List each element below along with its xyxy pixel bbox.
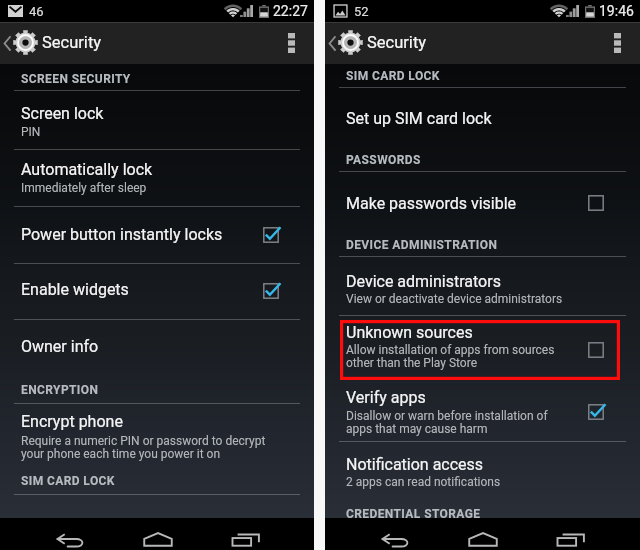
button[interactable] (325, 173, 640, 229)
button[interactable] (0, 264, 314, 319)
staticText: SCREEN SECURITY (21, 72, 131, 86)
staticText: apps that may cause harm (346, 422, 488, 436)
button[interactable] (0, 320, 314, 376)
button[interactable] (325, 443, 640, 501)
staticText: Security (42, 33, 102, 52)
button[interactable]: Home (114, 518, 202, 550)
staticText: Owner info (21, 337, 99, 356)
button[interactable] (0, 150, 314, 206)
staticText: Notification access (346, 455, 484, 474)
button[interactable]: Back (351, 518, 439, 550)
staticText: other than the Play Store (346, 356, 478, 370)
staticText: PASSWORDS (346, 153, 421, 167)
button[interactable] (325, 258, 640, 316)
button[interactable] (0, 207, 314, 263)
staticText: Set up SIM card lock (346, 109, 492, 128)
staticText: Immediately after sleep (21, 181, 147, 195)
staticText: 46 (29, 4, 44, 19)
button[interactable]: Unchecked (574, 334, 618, 366)
staticText: Screen lock (21, 104, 104, 123)
button[interactable]: Navigate up (325, 22, 363, 64)
button[interactable]: Recent apps (527, 518, 615, 550)
button[interactable]: Checked (249, 219, 293, 251)
button[interactable] (325, 317, 640, 380)
button[interactable]: Back (26, 518, 114, 550)
button[interactable]: Checked (249, 275, 293, 307)
staticText: your phone each time you power it on (21, 447, 221, 461)
button[interactable]: More options (594, 22, 640, 64)
staticText: DEVICE ADMINISTRATION (346, 238, 498, 252)
button[interactable] (325, 88, 640, 144)
button[interactable]: Unchecked (574, 187, 618, 219)
staticText: CREDENTIAL STORAGE (346, 507, 481, 521)
staticText: Verify apps (346, 388, 426, 407)
staticText: Device administrators (346, 272, 501, 291)
button[interactable]: Navigate up (0, 22, 38, 64)
staticText: Make passwords visible (346, 194, 517, 213)
staticText: 52 (354, 4, 369, 19)
button[interactable]: Recent apps (202, 518, 290, 550)
staticText: SIM CARD LOCK (21, 474, 115, 488)
staticText: SIM CARD LOCK (346, 69, 440, 83)
staticText: Unknown sources (346, 323, 473, 342)
staticText: 19:46 (599, 3, 634, 19)
staticText: Allow installation of apps from sources (346, 343, 555, 357)
staticText: Encrypt phone (21, 412, 123, 431)
staticText: 2 apps can read notifications (346, 475, 501, 489)
button[interactable]: More options (268, 22, 314, 64)
staticText: Power button instantly locks (21, 225, 223, 244)
staticText: Disallow or warn before installation of (346, 409, 548, 423)
button[interactable]: Home (439, 518, 527, 550)
staticText: View or deactivate device administrators (346, 292, 563, 306)
button[interactable] (325, 381, 640, 441)
staticText: Enable widgets (21, 280, 129, 299)
button[interactable] (0, 91, 314, 149)
staticText: 22:27 (273, 3, 308, 19)
staticText: Automatically lock (21, 160, 153, 179)
staticText: Security (367, 33, 427, 52)
staticText: Require a numeric PIN or password to dec… (21, 434, 266, 448)
staticText: ENCRYPTION (21, 383, 99, 397)
staticText: PIN (21, 125, 41, 139)
button[interactable] (0, 404, 314, 466)
button[interactable]: Checked (574, 396, 618, 428)
